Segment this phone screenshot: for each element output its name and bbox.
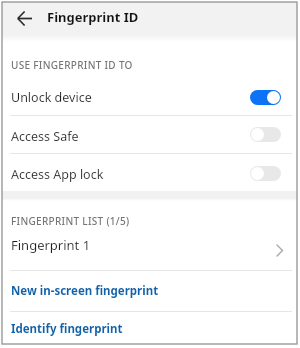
button[interactable]: Access Safe: [0, 117, 300, 155]
staticText: USE FINGERPRINT ID TO: [11, 58, 133, 72]
button[interactable]: Unlock device: [0, 78, 300, 116]
staticText: Unlock device: [11, 89, 92, 106]
staticText: Access Safe: [11, 128, 79, 145]
staticText: Fingerprint ID: [47, 8, 139, 26]
button[interactable]: [250, 166, 281, 181]
staticText: FINGERPRINT LIST (1/5): [11, 214, 130, 228]
button[interactable]: Fingerprint 1: [0, 227, 300, 263]
button[interactable]: [250, 127, 281, 142]
button[interactable]: Identify fingerprint: [0, 312, 300, 346]
button[interactable]: [250, 90, 281, 105]
staticText: Identify fingerprint: [11, 321, 123, 337]
button[interactable]: New in-screen fingerprint: [0, 271, 300, 311]
staticText: Fingerprint 1: [11, 236, 91, 254]
button[interactable]: [11, 5, 38, 32]
staticText: Access App lock: [11, 166, 104, 183]
staticText: New in-screen fingerprint: [11, 283, 159, 299]
button[interactable]: Access App lock: [0, 155, 300, 193]
